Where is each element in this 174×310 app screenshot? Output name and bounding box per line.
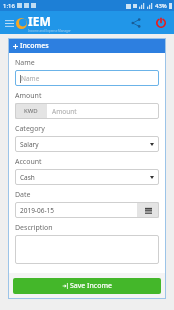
staticText: 1:16 bbox=[3, 2, 15, 10]
staticText: Income and Expense Manager bbox=[28, 29, 71, 33]
staticText: Date bbox=[15, 190, 31, 200]
staticText: Account bbox=[15, 157, 42, 167]
staticText: Amount bbox=[52, 107, 77, 116]
staticText: Salary bbox=[20, 140, 150, 149]
button[interactable]: Share bbox=[128, 15, 144, 31]
button[interactable]: 2019-06-15 bbox=[15, 202, 159, 218]
button[interactable]: Logout bbox=[153, 15, 169, 31]
button[interactable]: KWD bbox=[15, 103, 159, 119]
staticText: Amount bbox=[15, 91, 42, 101]
staticText: Category bbox=[15, 124, 45, 134]
staticText: Save Income bbox=[70, 281, 112, 291]
staticText: 2019-06-15 bbox=[20, 206, 54, 215]
button[interactable]: Pick date bbox=[137, 202, 159, 218]
staticText: 43% bbox=[155, 2, 167, 10]
button[interactable]: Menu bbox=[2, 16, 16, 30]
button[interactable]: Save Income bbox=[13, 278, 161, 294]
staticText: IEM bbox=[28, 13, 51, 29]
button[interactable]: Salary bbox=[20, 136, 154, 152]
button[interactable]: Cash bbox=[20, 169, 154, 185]
staticText: Name bbox=[15, 58, 35, 68]
button[interactable] bbox=[15, 235, 159, 264]
staticText: Incomes bbox=[20, 41, 49, 51]
staticText: Name bbox=[21, 74, 40, 83]
staticText: Cash bbox=[20, 173, 150, 182]
staticText: Description bbox=[15, 223, 53, 233]
button[interactable]: Name bbox=[20, 70, 159, 86]
staticText: KWD bbox=[24, 107, 38, 115]
